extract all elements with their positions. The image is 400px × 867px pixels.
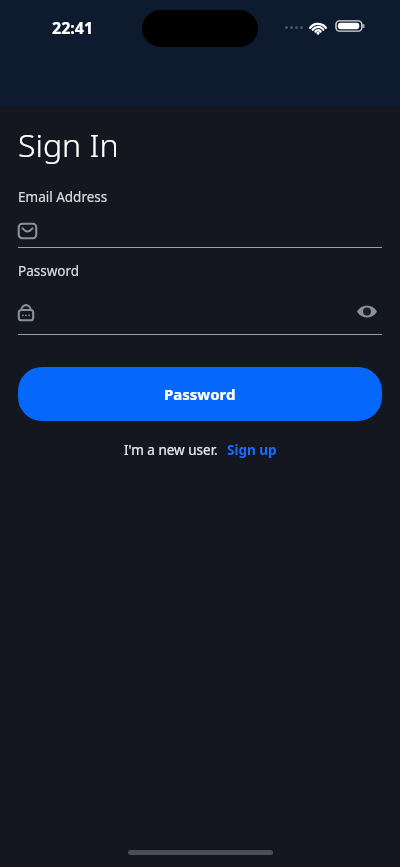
button[interactable]: Show password: [352, 298, 382, 324]
button[interactable]: Password: [18, 367, 382, 421]
staticText: Password: [164, 384, 236, 404]
button[interactable]: [18, 217, 382, 245]
staticText: Sign up: [227, 441, 277, 459]
staticText: Email Address: [18, 188, 108, 206]
staticText: Password: [18, 262, 80, 280]
staticText: Sign In: [18, 123, 119, 167]
staticText: I'm a new user.: [124, 441, 218, 459]
button[interactable]: Sign up: [227, 441, 277, 459]
staticText: 22:41: [52, 17, 94, 39]
button[interactable]: [18, 298, 352, 324]
